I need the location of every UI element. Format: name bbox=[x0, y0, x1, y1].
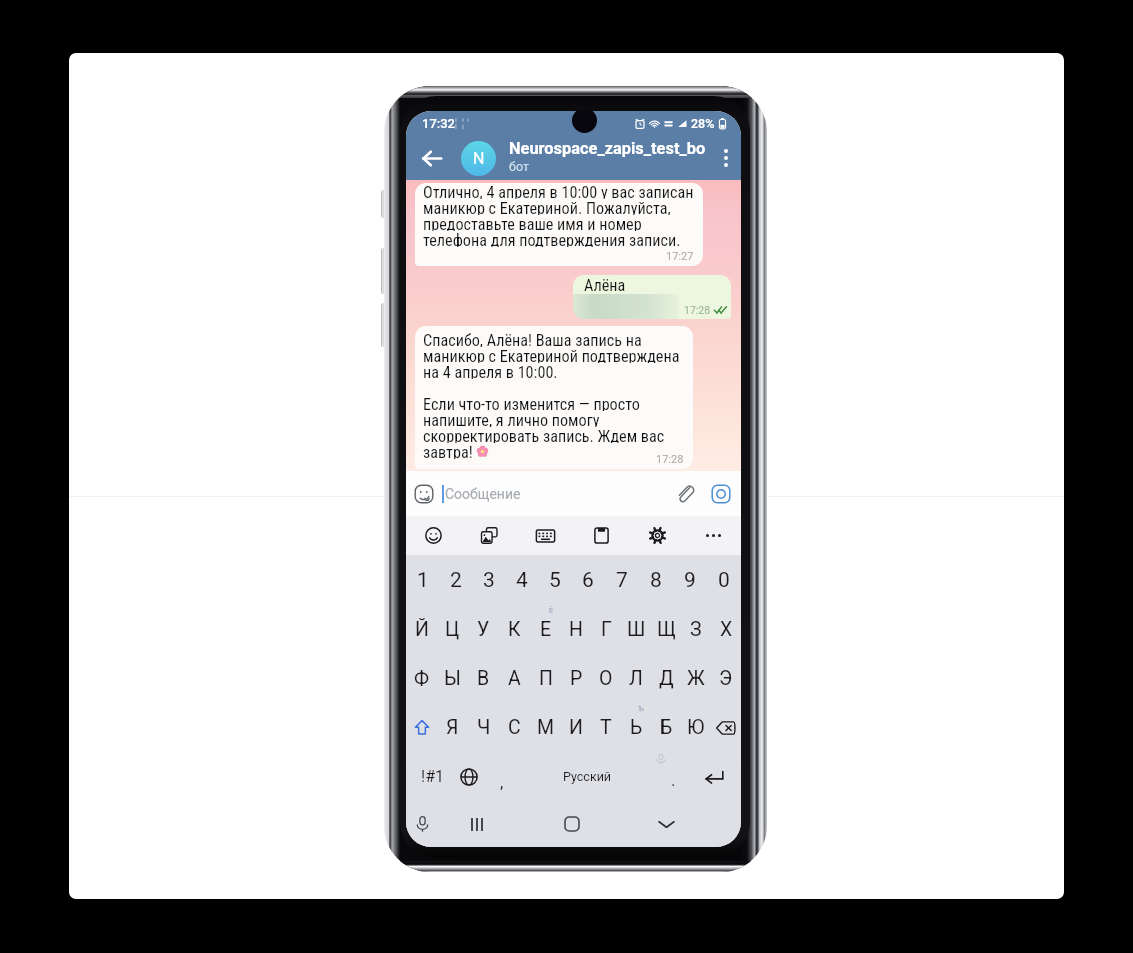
button[interactable]: N bbox=[461, 141, 496, 176]
button[interactable]: Ч bbox=[468, 703, 499, 752]
staticText: Алёна bbox=[584, 276, 626, 292]
button[interactable]: Я bbox=[437, 703, 468, 752]
button[interactable]: Л bbox=[621, 654, 651, 703]
button[interactable]: Ш bbox=[621, 605, 651, 654]
button[interactable]: Й bbox=[406, 605, 437, 654]
button[interactable]: 2 bbox=[439, 555, 472, 605]
button[interactable]: 8 bbox=[639, 555, 673, 605]
button[interactable]: Neurospace_zapis_test_bo bbox=[509, 139, 706, 174]
staticText: З bbox=[690, 618, 702, 641]
staticText: 9 bbox=[684, 568, 696, 593]
staticText: 4 bbox=[516, 568, 528, 593]
button[interactable]: Русский bbox=[512, 752, 662, 801]
button[interactable]: Алёна bbox=[573, 275, 731, 319]
button[interactable]: Backspace bbox=[711, 703, 741, 752]
button[interactable]: Ю bbox=[681, 703, 711, 752]
staticText: Р bbox=[570, 667, 583, 690]
button[interactable]: Settings bbox=[629, 516, 685, 555]
button[interactable]: Б bbox=[651, 703, 681, 752]
staticText: . bbox=[671, 770, 676, 790]
staticText: Й bbox=[415, 618, 429, 641]
staticText: Я bbox=[446, 716, 459, 739]
staticText: 17:27 bbox=[666, 250, 694, 263]
button[interactable]: Е bbox=[530, 605, 561, 654]
button[interactable]: 3 bbox=[472, 555, 505, 605]
button[interactable]: А bbox=[499, 654, 530, 703]
staticText: маникюр с Екатериной. Пожалуйста, bbox=[423, 199, 671, 215]
button[interactable]: 9 bbox=[673, 555, 707, 605]
button[interactable]: И bbox=[561, 703, 591, 752]
staticText: 5 bbox=[549, 568, 561, 593]
button[interactable]: More options bbox=[711, 136, 741, 180]
button[interactable]: Emoji bbox=[406, 476, 442, 512]
button[interactable]: Э bbox=[711, 654, 741, 703]
button[interactable]: Х bbox=[711, 605, 741, 654]
button[interactable]: Р bbox=[561, 654, 591, 703]
staticText: В bbox=[477, 667, 490, 690]
button[interactable]: Ы bbox=[437, 654, 468, 703]
staticText: А bbox=[508, 667, 521, 690]
staticText: К bbox=[508, 618, 521, 641]
button[interactable]: Clipboard bbox=[573, 516, 629, 555]
staticText: напишите, я лично помогу bbox=[423, 411, 600, 427]
button[interactable]: 0 bbox=[707, 555, 741, 605]
button[interactable]: Change language bbox=[452, 752, 486, 801]
staticText: N bbox=[473, 149, 485, 168]
staticText: 2 bbox=[450, 568, 462, 593]
button[interactable]: Recent apps bbox=[457, 801, 497, 847]
staticText: скорректировать запись. Ждем вас bbox=[423, 427, 665, 443]
staticText: Сообщение bbox=[445, 486, 667, 502]
staticText: Если что-то изменится — просто bbox=[423, 395, 640, 411]
button[interactable]: More bbox=[685, 516, 741, 555]
button[interactable]: 7 bbox=[605, 555, 639, 605]
button[interactable]: К bbox=[499, 605, 530, 654]
staticText: предоставьте ваше имя и номер bbox=[423, 215, 642, 231]
button[interactable]: Т bbox=[591, 703, 621, 752]
button[interactable]: С bbox=[499, 703, 530, 752]
staticText: Щ bbox=[657, 618, 676, 641]
button[interactable]: Ж bbox=[681, 654, 711, 703]
button[interactable]: Н bbox=[561, 605, 591, 654]
button[interactable]: Emoji bbox=[406, 516, 461, 555]
button[interactable]: М bbox=[530, 703, 561, 752]
button[interactable]: Спасибо, Алёна! Ваша запись на bbox=[415, 326, 693, 469]
button[interactable]: П bbox=[530, 654, 561, 703]
button[interactable]: Ф bbox=[406, 654, 437, 703]
button[interactable]: У bbox=[468, 605, 499, 654]
button[interactable]: Enter bbox=[694, 752, 734, 801]
button[interactable]: !#1 bbox=[411, 752, 453, 801]
button[interactable]: 5 bbox=[538, 555, 571, 605]
button[interactable]: 1 bbox=[406, 555, 439, 605]
button[interactable]: Д bbox=[651, 654, 681, 703]
staticText: Ц bbox=[445, 618, 460, 641]
button[interactable]: О bbox=[591, 654, 621, 703]
button[interactable]: В bbox=[468, 654, 499, 703]
staticText: Н bbox=[569, 618, 583, 641]
staticText: Neurospace_zapis_test_bo bbox=[509, 139, 706, 158]
staticText: на 4 апреля в 10:00. bbox=[423, 363, 558, 379]
button[interactable]: Ц bbox=[437, 605, 468, 654]
button[interactable]: З bbox=[681, 605, 711, 654]
staticText: Ч bbox=[477, 716, 491, 739]
button[interactable]: Camera bbox=[703, 476, 739, 512]
button[interactable]: Отлично, 4 апреля в 10:00 у вас записан bbox=[415, 183, 703, 266]
button[interactable]: Ь bbox=[621, 703, 651, 752]
staticText: Ь bbox=[630, 716, 643, 739]
button[interactable]: Stickers bbox=[461, 516, 517, 555]
button[interactable]: 6 bbox=[571, 555, 605, 605]
button[interactable]: Г bbox=[591, 605, 621, 654]
button[interactable]: Hide keyboard bbox=[646, 801, 686, 847]
staticText: Отлично, 4 апреля в 10:00 у вас записан bbox=[423, 183, 694, 199]
button[interactable]: . bbox=[656, 752, 690, 801]
staticText: 6 bbox=[582, 568, 594, 593]
button[interactable]: Keyboard mode bbox=[517, 516, 573, 555]
button[interactable]: Щ bbox=[651, 605, 681, 654]
button[interactable]: Shift bbox=[406, 703, 437, 752]
button[interactable]: 4 bbox=[505, 555, 538, 605]
button[interactable]: Home bbox=[552, 801, 592, 847]
staticText: Ё bbox=[549, 607, 553, 615]
button[interactable]: Voice input bbox=[406, 801, 438, 847]
button[interactable]: Back bbox=[410, 136, 454, 180]
button[interactable]: , bbox=[485, 752, 519, 801]
button[interactable]: Attach file bbox=[667, 476, 703, 512]
